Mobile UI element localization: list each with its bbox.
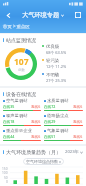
button[interactable]: 气象监测站 — [44, 128, 83, 141]
staticText: 离线6 — [31, 104, 41, 109]
staticText: 大气环境专题 — [22, 11, 60, 19]
button[interactable]: Scan — [73, 10, 83, 20]
staticText: 150 — [2, 167, 8, 171]
staticText: 噪声监测站 — [6, 113, 28, 118]
button[interactable]: Back — [3, 10, 13, 20]
staticText: 在线72 — [44, 104, 56, 109]
staticText: 0 — [6, 180, 8, 184]
button[interactable]: 噪声监测站 — [3, 113, 41, 126]
staticText: 在线18 — [3, 119, 15, 124]
staticText: 离线6 — [31, 119, 41, 124]
staticText: 空气监测站 — [6, 98, 28, 103]
staticText: 在线29 — [44, 119, 56, 124]
button[interactable]: 重点排放企业 — [3, 128, 41, 141]
staticText: 离线6 — [73, 119, 83, 124]
staticText: 轻污染 — [46, 58, 60, 64]
staticText: 50 — [4, 176, 8, 180]
staticText: 设备在线情况 — [6, 91, 36, 97]
staticText: 空气环境综合指数 — [26, 159, 58, 164]
staticText: 道路扬尘点 — [47, 113, 69, 118]
button[interactable]: 空气环境综合指数 — [23, 158, 64, 165]
button[interactable]: 空气监测站 — [3, 98, 41, 111]
button[interactable]: 大气环境专题 — [22, 11, 64, 19]
staticText: 大气环境质量趋势（月） — [6, 149, 61, 155]
button[interactable]: 不明确 — [42, 72, 83, 83]
staticText: 2023年 — [65, 149, 79, 155]
button[interactable]: 首页 > 重点区 — [3, 23, 30, 29]
staticText: 107 — [14, 56, 29, 68]
staticText: 重点排放企业 — [6, 128, 32, 133]
staticText: 优良级 — [46, 44, 60, 50]
staticText: 在线35 — [3, 104, 15, 109]
staticText: 离线6 — [31, 134, 41, 139]
staticText: 12个 11.2% — [46, 64, 67, 69]
staticText: 总数 — [18, 68, 25, 72]
button[interactable]: 2023年 — [65, 149, 83, 155]
staticText: 27个 25.3% — [46, 78, 67, 83]
staticText: 68个 63.5% — [46, 50, 67, 55]
staticText: 水质监测站 — [47, 98, 69, 103]
staticText: 不明确 — [46, 72, 60, 78]
button[interactable]: 优良级 — [42, 44, 83, 55]
staticText: 离线6 — [73, 104, 83, 109]
staticText: 站点监测情况 — [6, 37, 36, 43]
staticText: 气象监测站 — [47, 128, 69, 133]
staticText: 在线51 — [44, 134, 56, 139]
staticText: 离线6 — [73, 134, 83, 139]
button[interactable]: 轻污染 — [42, 58, 83, 69]
staticText: 100 — [2, 171, 8, 175]
button[interactable]: 水质监测站 — [44, 98, 83, 111]
staticText: 首页 > 重点区 — [3, 23, 30, 29]
staticText: 在线44 — [3, 134, 15, 139]
button[interactable]: 道路扬尘点 — [44, 113, 83, 126]
